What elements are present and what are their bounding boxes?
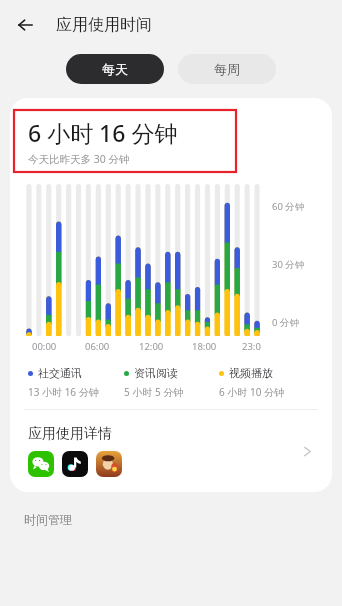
- staticText: 5 小时 5 分钟: [124, 385, 184, 399]
- staticText: 资讯阅读: [134, 366, 178, 380]
- staticText: 社交通讯: [38, 366, 82, 380]
- staticText: 13 小时 16 分钟: [28, 385, 99, 399]
- staticText: 06:00: [85, 340, 110, 353]
- staticText: 6 小时 10 分钟: [219, 385, 284, 399]
- staticText: 30 分钟: [272, 258, 305, 271]
- staticText: 00:00: [32, 340, 57, 353]
- staticText: 应用使用时间: [56, 15, 152, 35]
- staticText: 每天: [102, 61, 128, 77]
- button[interactable]: 每周: [178, 54, 276, 84]
- staticText: 18:00: [192, 340, 217, 353]
- staticText: 60 分钟: [272, 200, 305, 213]
- button[interactable]: 应用使用详情: [10, 410, 332, 492]
- staticText: 时间管理: [24, 512, 72, 527]
- staticText: 今天比昨天多 30 分钟: [28, 152, 130, 166]
- button[interactable]: Back: [10, 10, 40, 40]
- staticText: 12:00: [139, 340, 164, 353]
- staticText: 应用使用详情: [28, 425, 112, 443]
- staticText: 0 分钟: [272, 316, 299, 329]
- staticText: 6 小时 16 分钟: [28, 117, 178, 148]
- staticText: 23:00: [242, 340, 262, 356]
- button[interactable]: 每天: [66, 54, 164, 84]
- staticText: 视频播放: [229, 366, 273, 380]
- staticText: 每周: [214, 61, 240, 77]
